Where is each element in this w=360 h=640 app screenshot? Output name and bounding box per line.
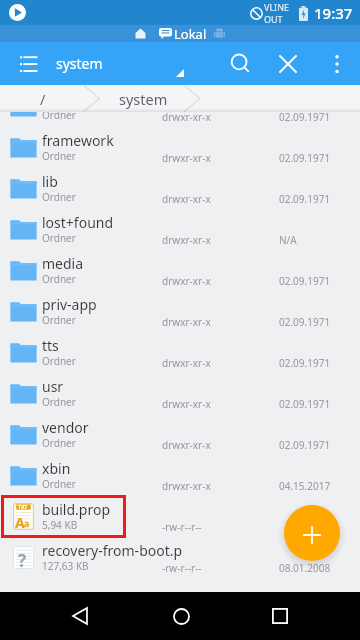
staticText: TXT [18,504,28,511]
staticText: 02.09.1971 [279,274,331,288]
staticText: media [42,254,84,273]
staticText: drwxr-xr-x [162,151,211,165]
button[interactable]: xbin [0,455,360,496]
staticText: drwxr-xr-x [162,356,211,370]
staticText: drwxr-xr-x [162,438,211,452]
staticText: system [119,89,168,109]
staticText: -rw-r--r-- [162,520,202,534]
staticText: 02.09.1971 [279,192,331,206]
button[interactable]: system [92,85,195,112]
staticText: tts [42,336,59,355]
staticText: 02.09.1971 [279,438,331,452]
staticText: OUT [264,13,283,25]
staticText: bin [42,90,63,109]
button[interactable]: Search [218,42,260,85]
staticText: Ordner [42,149,76,163]
button[interactable]: Recents [256,592,304,640]
button[interactable]: Home [157,592,205,640]
staticText: Ordner [42,108,76,122]
staticText: lost+found [42,213,114,232]
staticText: xbin [42,459,71,478]
staticText: 02.09.1971 [279,110,331,124]
staticText: drwxr-xr-x [162,274,211,288]
staticText: recovery-from-boot.p [42,541,183,560]
staticText: Ordner [42,477,76,491]
button[interactable]: More options [320,42,354,85]
button[interactable]: / [0,85,92,112]
staticText: system [56,54,103,73]
button[interactable]: tts [0,332,360,373]
staticText: lib [42,172,58,191]
staticText: / [40,89,46,109]
staticText: a [24,518,30,530]
staticText: drwxr-xr-x [162,397,211,411]
button[interactable]: ? [0,537,360,578]
staticText: drwxr-xr-x [162,233,211,247]
button[interactable]: Menu [7,42,51,85]
button[interactable]: media [0,250,360,291]
staticText: A [15,513,25,532]
staticText: 19:37 [314,3,353,23]
button[interactable]: vendor [0,414,360,455]
staticText: 02.09.1971 [279,151,331,165]
staticText: drwxr-xr-x [162,315,211,329]
staticText: Ordner [42,354,76,368]
staticText: Ordner [42,190,76,204]
staticText: priv-app [42,295,97,314]
staticText: Ordner [42,272,76,286]
button[interactable]: lost+found [0,209,360,250]
staticText: drwxr-xr-x [162,192,211,206]
button[interactable]: priv-app [0,291,360,332]
button[interactable]: Close [266,42,309,85]
staticText: build.prop [42,500,111,519]
staticText: 02.09.1971 [279,315,331,329]
staticText: Ordner [42,436,76,450]
button[interactable]: lib [0,168,360,209]
staticText: ? [18,549,27,572]
staticText: Lokal [174,25,207,42]
staticText: drwxr-xr-x [162,110,211,124]
staticText: VLINE [264,1,290,13]
staticText: N/A [279,233,297,247]
staticText: 08.01.2008 [279,561,331,575]
staticText: -rw-r--r-- [162,561,202,575]
button[interactable]: bin [0,86,360,127]
button[interactable]: framework [0,127,360,168]
button[interactable]: usr [0,373,360,414]
staticText: Ordner [42,231,76,245]
staticText: 127,63 KB [42,559,89,573]
staticText: 02.09.1971 [279,397,331,411]
staticText: 04.15.2017 [279,479,331,493]
staticText: 5,94 KB [42,518,78,532]
staticText: Ordner [42,313,76,327]
staticText: 02.09.1971 [279,356,331,370]
staticText: framework [42,131,114,150]
staticText: drwxr-xr-x [162,479,211,493]
button[interactable]: Add [284,505,340,561]
button[interactable]: TXT [0,496,360,537]
staticText: vendor [42,418,89,437]
staticText: usr [42,377,64,396]
staticText: Ordner [42,395,76,409]
button[interactable]: Back [56,592,104,640]
